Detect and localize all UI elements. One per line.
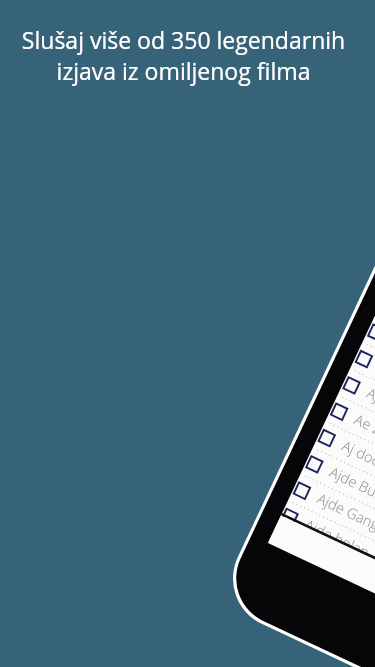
staticText: Slušaj više od 350 legendarnih izjava iz… — [2, 24, 365, 86]
